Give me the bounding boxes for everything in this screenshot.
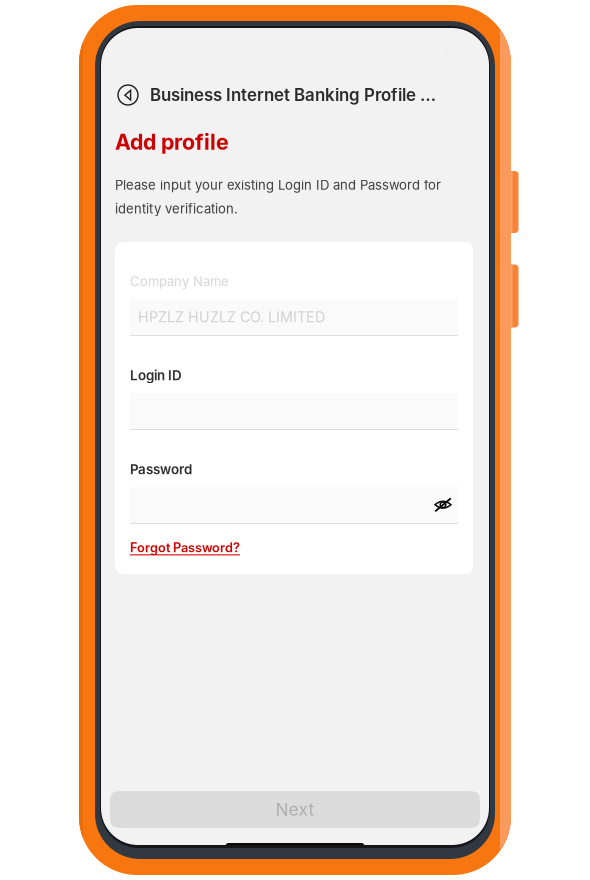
staticText: Company Name: [130, 274, 229, 289]
staticText: Login ID: [130, 367, 182, 383]
staticText: HPZLZ HUZLZ CO. LIMITED: [138, 308, 325, 326]
staticText: identity verification.: [115, 201, 238, 217]
button[interactable]: Show password: [428, 487, 458, 523]
staticText: Password: [130, 461, 192, 477]
staticText: Next: [275, 799, 314, 820]
button[interactable]: Next: [110, 791, 480, 828]
staticText: Forgot Password?: [130, 540, 240, 555]
staticText: Business Internet Banking Profile …: [150, 85, 436, 105]
button[interactable]: Back: [115, 82, 141, 108]
staticText: Please input your existing Login ID and …: [115, 177, 441, 193]
staticText: Add profile: [115, 129, 229, 155]
button[interactable]: Forgot Password?: [130, 540, 240, 555]
